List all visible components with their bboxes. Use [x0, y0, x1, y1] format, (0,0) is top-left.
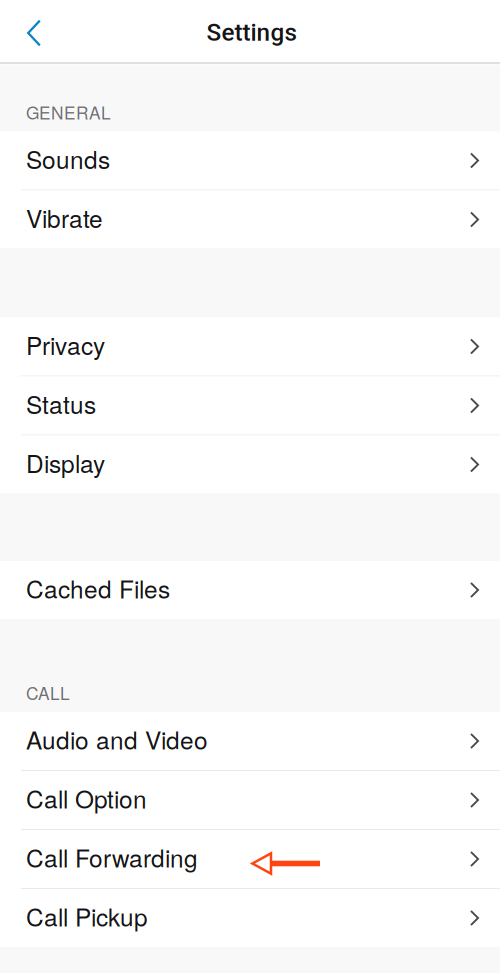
- staticText: Privacy: [26, 327, 105, 362]
- button[interactable]: Sounds: [0, 131, 500, 190]
- staticText: Sounds: [26, 141, 110, 176]
- button[interactable]: Call Forwarding: [0, 830, 500, 889]
- button[interactable]: Display: [0, 435, 500, 493]
- staticText: Call Pickup: [26, 898, 148, 933]
- staticText: GENERAL: [26, 100, 111, 124]
- staticText: Status: [26, 386, 96, 421]
- staticText: Audio and Video: [26, 721, 208, 756]
- button[interactable]: Vibrate: [0, 190, 500, 248]
- staticText: Settings: [206, 18, 296, 47]
- staticText: Cached Files: [26, 570, 170, 605]
- staticText: Display: [26, 445, 105, 480]
- button[interactable]: Cached Files: [0, 561, 500, 619]
- button[interactable]: Back: [0, 0, 57, 63]
- staticText: CALL: [26, 680, 70, 705]
- button[interactable]: Call Option: [0, 771, 500, 830]
- button[interactable]: Privacy: [0, 317, 500, 376]
- button[interactable]: Call Pickup: [0, 889, 500, 947]
- button[interactable]: Audio and Video: [0, 712, 500, 771]
- staticText: Call Option: [26, 780, 147, 815]
- staticText: Call Forwarding: [26, 839, 198, 874]
- staticText: Vibrate: [26, 200, 103, 235]
- button[interactable]: Status: [0, 376, 500, 435]
